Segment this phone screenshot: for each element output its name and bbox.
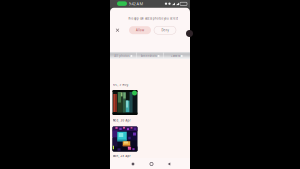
button[interactable]: Recent apps <box>128 159 138 169</box>
button[interactable]: Close <box>113 26 122 35</box>
button[interactable]: Camera <box>163 52 190 60</box>
staticText: Wed, 30 Apr <box>112 119 130 122</box>
button[interactable]: Back <box>164 159 174 169</box>
button[interactable]: Home <box>146 159 156 169</box>
staticText: Allow <box>136 28 144 32</box>
staticText: Mon, 28 Apr <box>112 154 130 158</box>
staticText: Deny <box>161 28 168 32</box>
staticText: Tue, 5 Aug <box>112 83 128 86</box>
button[interactable]: Screenshots <box>137 52 163 60</box>
staticText: Camera <box>171 54 180 58</box>
staticText: All photos <box>114 54 129 58</box>
button[interactable]: Deny <box>154 26 176 34</box>
staticText: 9:42 AM <box>128 1 143 6</box>
staticText: This app can access photos you select <box>128 17 178 20</box>
button[interactable]: Allow <box>129 26 151 34</box>
button[interactable]: All photos <box>110 52 137 60</box>
staticText: Screenshots <box>140 54 156 58</box>
